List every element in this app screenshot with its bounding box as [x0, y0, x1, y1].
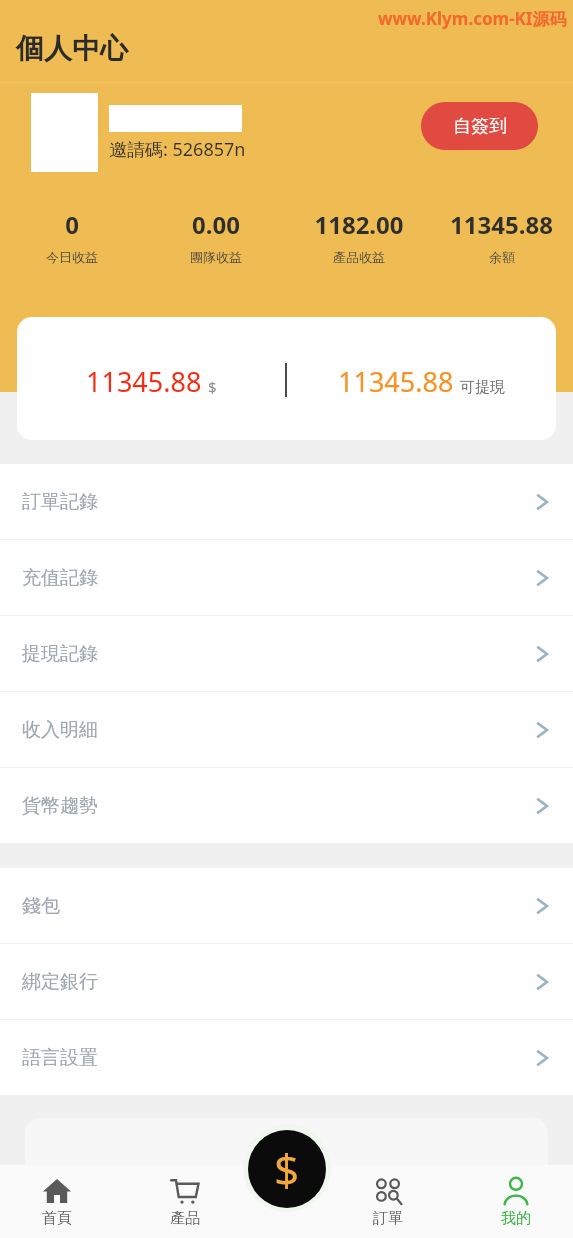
- staticText: 個人中心: [16, 31, 128, 66]
- staticText: 11345.88: [450, 208, 553, 241]
- staticText: 自簽到: [453, 115, 507, 138]
- staticText: 貨幣趨勢: [22, 794, 98, 818]
- staticText: 綁定銀行: [22, 970, 98, 994]
- button[interactable]: Earn money: [248, 1130, 326, 1208]
- staticText: www.Klym.com-KI源码: [378, 7, 567, 30]
- staticText: 今日收益: [46, 249, 98, 265]
- staticText: 我的: [501, 1209, 531, 1228]
- staticText: 余額: [489, 249, 515, 265]
- staticText: 1182.00: [314, 208, 404, 241]
- staticText: 訂單: [373, 1209, 403, 1228]
- button[interactable]: 綁定銀行: [0, 944, 573, 1020]
- button[interactable]: 訂單記錄: [0, 464, 573, 540]
- staticText: 首頁: [42, 1209, 72, 1228]
- staticText: 團隊收益: [190, 249, 242, 265]
- button[interactable]: 自簽到: [421, 102, 538, 150]
- button[interactable]: 收入明細: [0, 692, 573, 768]
- button[interactable]: 貨幣趨勢: [0, 768, 573, 844]
- staticText: 11345.88: [86, 363, 202, 400]
- staticText: 0.00: [192, 208, 240, 241]
- staticText: 訂單記錄: [22, 490, 98, 514]
- button[interactable]: 退出登錄: [25, 1118, 548, 1188]
- button[interactable]: 首頁: [0, 1165, 114, 1238]
- staticText: 可提現: [460, 378, 505, 397]
- staticText: 充值記錄: [22, 566, 98, 590]
- staticText: 退出登錄: [249, 1141, 325, 1165]
- staticText: 錢包: [22, 894, 60, 918]
- staticText: 11345.88: [338, 363, 454, 400]
- staticText: 收入明細: [22, 718, 98, 742]
- staticText: $: [274, 1139, 300, 1199]
- staticText: 產品收益: [333, 249, 385, 265]
- button[interactable]: 提現記錄: [0, 616, 573, 692]
- button[interactable]: 錢包: [0, 868, 573, 944]
- button[interactable]: 我的: [459, 1165, 573, 1238]
- staticText: 0: [65, 208, 79, 241]
- button[interactable]: 產品: [128, 1165, 242, 1238]
- button[interactable]: 充值記錄: [0, 540, 573, 616]
- staticText: 產品: [170, 1209, 200, 1228]
- staticText: 邀請碼: 526857n: [109, 137, 246, 162]
- staticText: 語言設置: [22, 1046, 98, 1070]
- staticText: 提現記錄: [22, 642, 98, 666]
- button[interactable]: 訂單: [331, 1165, 445, 1238]
- button[interactable]: 語言設置: [0, 1020, 573, 1096]
- staticText: $: [208, 377, 217, 397]
